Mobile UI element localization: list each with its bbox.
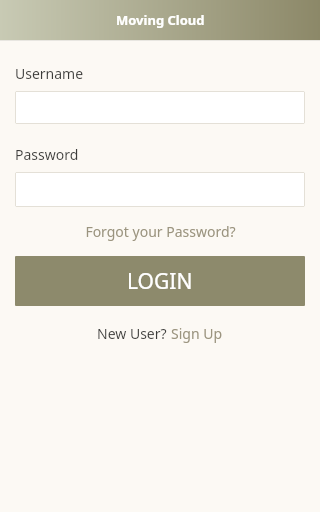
staticText: Password — [15, 145, 79, 164]
button[interactable]: Forgot your Password? — [79, 218, 242, 245]
staticText: New User? — [97, 324, 171, 343]
staticText: Sign Up — [171, 324, 223, 343]
button[interactable] — [15, 172, 305, 207]
staticText: Forgot your Password? — [85, 222, 236, 241]
button[interactable]: Sign Up — [171, 320, 223, 347]
staticText: Moving Cloud — [116, 11, 205, 29]
staticText: Username — [15, 64, 84, 83]
staticText: LOGIN — [127, 267, 193, 296]
button[interactable]: LOGIN — [15, 256, 305, 306]
button[interactable] — [15, 91, 305, 124]
